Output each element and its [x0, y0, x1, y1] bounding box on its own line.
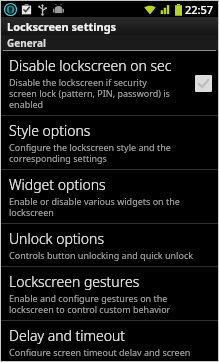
button[interactable]: Style options [1, 116, 218, 169]
staticText: Enable and configure gestures on the loc… [9, 292, 171, 315]
staticText: Unlock options [9, 229, 104, 248]
staticText: Configure screen timeout delay and scree… [9, 346, 191, 356]
staticText: Widget options [9, 175, 106, 194]
staticText: Enable or disable various widgets on the… [9, 195, 180, 218]
staticText: General [7, 36, 46, 50]
staticText: Disable lockscreen on sec [9, 56, 172, 75]
staticText: Lockscreen settings [7, 19, 117, 34]
button[interactable]: Disable lockscreen on secure checkbox [192, 72, 214, 94]
button[interactable]: Unlock options [1, 224, 218, 266]
staticText: 22:57 [185, 2, 214, 17]
staticText: Lockscreen gestures [9, 272, 140, 291]
button[interactable]: Lockscreen gestures [1, 267, 218, 320]
staticText: Style options [9, 121, 91, 140]
button[interactable]: Disable lockscreen on sec [1, 51, 218, 115]
staticText: Configure the lockscreen style and the c… [9, 141, 171, 164]
button[interactable]: Widget options [1, 170, 218, 223]
button[interactable]: Delay and timeout [1, 321, 218, 361]
staticText: Delay and timeout [9, 326, 126, 345]
staticText: Disable the lockscreen if security scree… [9, 76, 170, 110]
staticText: Controls button unlocking and quick unlo… [9, 249, 194, 261]
